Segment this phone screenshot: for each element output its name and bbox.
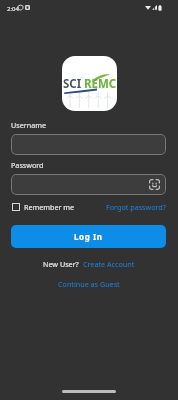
staticText: New User? — [43, 259, 79, 269]
staticText: Password — [11, 160, 44, 170]
button[interactable]: Continue as Guest — [58, 279, 120, 289]
staticText: Forgot password? — [106, 202, 166, 212]
button[interactable]: Face ID login — [149, 179, 160, 190]
staticText: REMC — [84, 76, 117, 92]
staticText: Remember me — [24, 202, 75, 212]
button[interactable]: Remember me — [12, 201, 75, 213]
staticText: Continue as Guest — [58, 279, 120, 289]
button[interactable]: Forgot password? — [106, 201, 166, 213]
staticText: SCI — [63, 76, 82, 92]
button[interactable] — [11, 134, 166, 155]
staticText: Username — [11, 120, 46, 130]
button[interactable]: Create Account — [83, 259, 135, 269]
staticText: 2:04 — [7, 5, 19, 13]
staticText: Log In — [74, 231, 103, 242]
button[interactable]: Face ID login — [11, 174, 166, 195]
staticText: Create Account — [83, 259, 135, 269]
button[interactable]: Log In — [11, 225, 166, 248]
